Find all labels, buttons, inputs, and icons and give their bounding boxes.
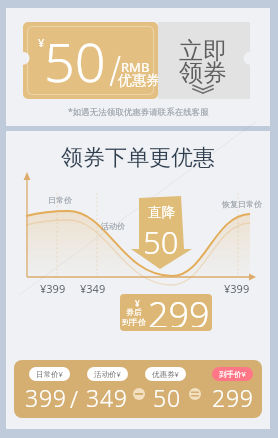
staticText: 299 [212, 382, 254, 413]
staticText: 立即 [179, 36, 227, 66]
button[interactable]: ¥ [23, 22, 158, 99]
button[interactable]: 活动价¥ [94, 367, 121, 381]
staticText: 50 [143, 221, 179, 263]
other: Expand [191, 84, 215, 95]
staticText: 活动价 [101, 221, 125, 231]
staticText: 直降 [148, 204, 175, 221]
staticText: 优惠券¥ [152, 369, 179, 379]
staticText: RMB [121, 58, 150, 76]
staticText: ¥ [135, 298, 140, 309]
staticText: 299 [148, 294, 210, 327]
staticText: 日常价 [48, 195, 72, 205]
staticText: 优惠券 [118, 72, 160, 90]
staticText: 到手价 [122, 317, 146, 327]
staticText: 活动价¥ [94, 369, 121, 379]
staticText: 券后 [126, 307, 142, 317]
other: minus [133, 388, 145, 400]
button[interactable]: 到手价¥ [219, 367, 246, 381]
staticText: 50 [153, 382, 181, 413]
other: equals [189, 388, 201, 400]
staticText: 日常价¥ [36, 369, 63, 379]
button[interactable]: 优惠券¥ [152, 367, 179, 381]
staticText: ¥ [38, 35, 45, 50]
staticText: 领券下单更优惠 [61, 144, 215, 172]
staticText: *如遇无法领取优惠券请联系在线客服 [68, 106, 209, 118]
button[interactable]: 日常价¥ [36, 367, 63, 381]
staticText: 349 [86, 382, 128, 413]
staticText: 50 [44, 24, 106, 98]
staticText: ¥399 [224, 281, 250, 296]
staticText: ¥399 [40, 281, 66, 296]
staticText: ¥349 [80, 281, 106, 296]
staticText: / [70, 383, 78, 414]
button[interactable]: 立即 [158, 22, 250, 99]
staticText: 399 [25, 382, 67, 413]
staticText: 领券 [179, 58, 227, 88]
staticText: 恢复日常价 [222, 199, 262, 209]
staticText: 到手价¥ [219, 369, 246, 379]
button[interactable]: ¥ [120, 294, 212, 331]
